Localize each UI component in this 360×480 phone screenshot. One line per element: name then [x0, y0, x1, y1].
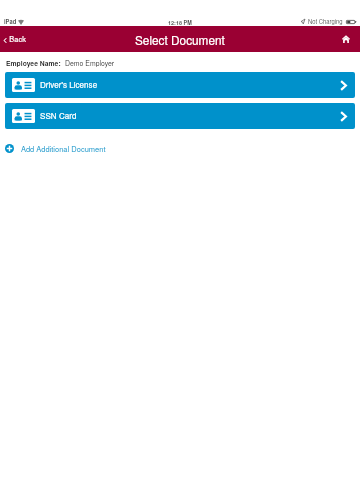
staticText: 12:18 PM: [168, 19, 192, 27]
staticText: Add Additional Document: [21, 143, 106, 154]
button[interactable]: Home: [334, 27, 360, 52]
button[interactable]: < Back: [0, 29, 30, 50]
staticText: Driver's License: [40, 79, 98, 91]
staticText: iPad: [4, 17, 17, 25]
staticText: Select Document: [135, 31, 225, 48]
button[interactable]: SSN Card: [5, 103, 355, 129]
staticText: SSN Card: [40, 110, 77, 122]
staticText: Demo Employer: [65, 58, 115, 68]
button[interactable]: Driver's License: [5, 72, 355, 98]
staticText: Not Charging: [308, 17, 343, 25]
staticText: < Back: [3, 34, 26, 45]
button[interactable]: Add Additional Document: [5, 143, 106, 154]
staticText: Employee Name:: [6, 58, 61, 68]
